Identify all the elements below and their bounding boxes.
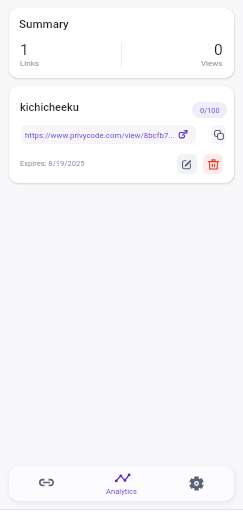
button[interactable]: Links	[9, 466, 84, 501]
button[interactable]: https://www.privycode.com/view/8bcfb7...	[21, 125, 196, 144]
staticText: Links	[20, 59, 39, 68]
staticText: 1	[20, 41, 29, 59]
button[interactable]: Analytics	[84, 466, 159, 501]
button[interactable]: Settings	[159, 466, 234, 501]
staticText: 0/100	[200, 106, 220, 115]
button[interactable]: 0/100	[192, 102, 227, 118]
staticText: Expires: 8/19/2025	[20, 159, 85, 168]
button[interactable]: Edit	[177, 154, 197, 174]
button[interactable]: Copy link	[211, 125, 226, 144]
staticText: Analytics	[106, 487, 137, 496]
staticText: Summary	[19, 17, 69, 31]
staticText: 0	[214, 41, 223, 59]
staticText: https://www.privycode.com/view/8bcfb7...	[25, 131, 175, 140]
button[interactable]: Delete	[203, 154, 223, 174]
staticText: Views	[201, 59, 223, 68]
staticText: kichicheeku	[20, 101, 79, 114]
